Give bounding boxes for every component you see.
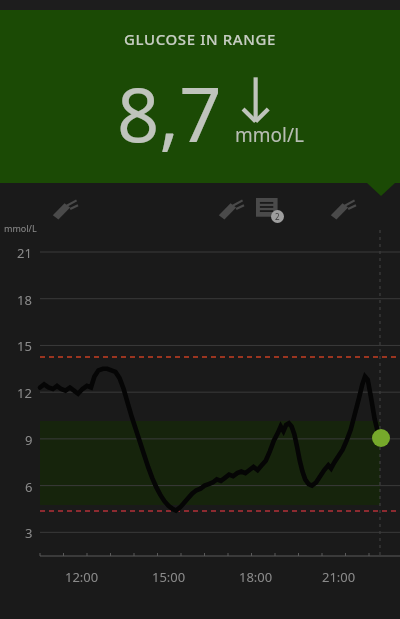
staticText: 8,7 xyxy=(117,63,222,158)
staticText: 15 xyxy=(17,337,32,355)
staticText: mmol/L xyxy=(235,122,304,148)
button[interactable]: Insulin entry xyxy=(50,198,78,222)
staticText: 21:00 xyxy=(322,568,356,586)
button[interactable]: Insulin entry xyxy=(216,198,244,222)
staticText: 15:00 xyxy=(152,568,186,586)
button[interactable]: Insulin entry xyxy=(328,198,356,222)
staticText: 6 xyxy=(25,478,33,496)
staticText: 18:00 xyxy=(239,568,273,586)
staticText: 12 xyxy=(17,384,32,402)
staticText: 21 xyxy=(17,244,32,262)
staticText: GLUCOSE IN RANGE xyxy=(124,29,276,49)
staticText: 2 xyxy=(275,211,280,222)
staticText: 18 xyxy=(17,291,32,309)
staticText: 9 xyxy=(25,431,33,449)
staticText: 3 xyxy=(25,524,33,542)
button[interactable]: Notes, 2 entries xyxy=(256,198,286,224)
staticText: mmol/L xyxy=(4,222,37,234)
staticText: 12:00 xyxy=(65,568,99,586)
button[interactable]: GLUCOSE IN RANGE xyxy=(0,10,400,183)
